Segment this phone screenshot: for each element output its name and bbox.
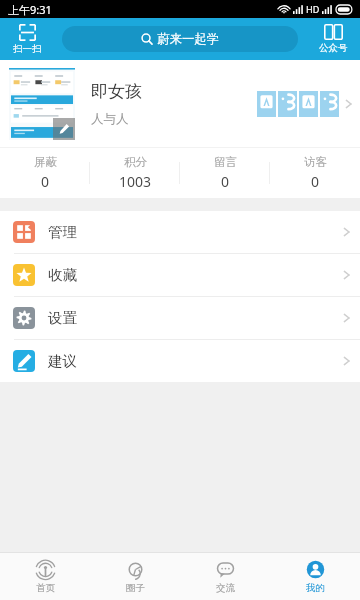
- staticText: 蔚来一起学: [157, 31, 220, 47]
- staticText: 上午9:31: [8, 2, 52, 17]
- button[interactable]: 管理: [0, 211, 360, 253]
- button[interactable]: 建议: [0, 340, 360, 382]
- staticText: 管理: [48, 223, 77, 241]
- button[interactable]: 扫一扫: [0, 18, 54, 60]
- staticText: 1003: [119, 172, 152, 191]
- staticText: 屏蔽: [34, 155, 57, 169]
- button[interactable]: 我的: [270, 553, 360, 600]
- button[interactable]: 编辑头像: [0, 60, 360, 147]
- button[interactable]: 编辑头像: [53, 118, 75, 140]
- staticText: 0: [41, 172, 50, 191]
- button[interactable]: 公众号: [306, 18, 360, 60]
- button[interactable]: 设置: [0, 297, 360, 339]
- staticText: 建议: [48, 352, 77, 370]
- staticText: 留言: [214, 155, 237, 169]
- staticText: 积分: [124, 155, 147, 169]
- staticText: 访客: [304, 155, 327, 169]
- staticText: 扫一扫: [13, 43, 42, 55]
- staticText: 收藏: [48, 266, 77, 284]
- button[interactable]: 蔚来一起学: [62, 26, 298, 52]
- staticText: 公众号: [319, 42, 348, 54]
- staticText: 0: [311, 172, 320, 191]
- button[interactable]: 首页: [0, 553, 90, 600]
- staticText: 设置: [48, 309, 77, 327]
- staticText: 0: [221, 172, 230, 191]
- staticText: 交流: [216, 582, 235, 594]
- button[interactable]: 交流: [180, 553, 270, 600]
- button[interactable]: 收藏: [0, 254, 360, 296]
- button[interactable]: 屏蔽: [0, 147, 90, 198]
- staticText: 即女孩: [91, 81, 142, 102]
- staticText: HD: [306, 3, 320, 15]
- button[interactable]: 访客: [270, 147, 360, 198]
- staticText: 首页: [36, 582, 55, 594]
- button[interactable]: 圈子: [90, 553, 180, 600]
- button[interactable]: 留言: [180, 147, 270, 198]
- staticText: 圈子: [126, 582, 145, 594]
- staticText: 我的: [306, 582, 325, 594]
- button[interactable]: 积分: [90, 147, 180, 198]
- staticText: 人与人: [91, 111, 129, 127]
